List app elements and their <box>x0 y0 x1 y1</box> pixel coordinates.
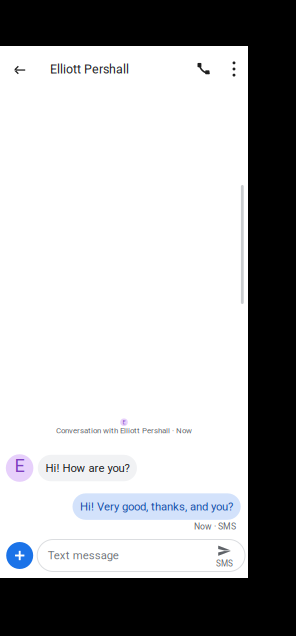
button[interactable]: More options <box>221 46 247 90</box>
button[interactable]: Send SMS <box>204 539 245 571</box>
button[interactable]: Add attachment <box>6 542 33 569</box>
staticText: Conversation with Elliott Pershall · Now <box>56 426 192 435</box>
staticText: E <box>15 455 25 476</box>
button[interactable]: Call <box>186 46 221 90</box>
staticText: SMS <box>216 559 233 568</box>
staticText: Now · SMS <box>194 521 236 531</box>
staticText: Text message <box>48 549 119 562</box>
staticText: E <box>122 419 125 425</box>
staticText: Elliott Pershall <box>50 62 129 76</box>
staticText: Hi! Very good, thanks, and you? <box>80 500 233 513</box>
button[interactable]: Back <box>0 46 39 90</box>
staticText: Hi! How are you? <box>45 461 129 475</box>
